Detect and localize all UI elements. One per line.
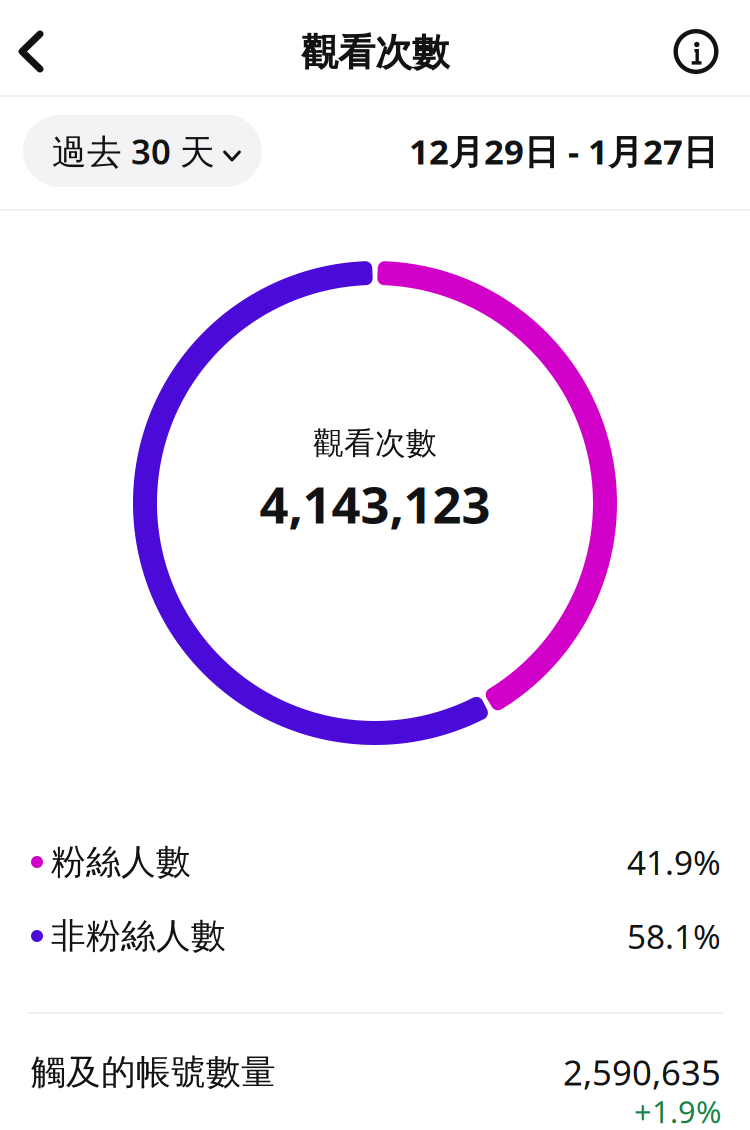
staticText: 觀看次數: [313, 424, 437, 462]
button[interactable]: Back: [3, 12, 59, 90]
staticText: 觸及的帳號數量: [31, 1051, 276, 1094]
button[interactable]: 過去 30 天: [23, 115, 262, 187]
staticText: 過去 30 天: [52, 128, 215, 174]
staticText: +1.9%: [634, 1091, 721, 1130]
button[interactable]: Information: [668, 12, 724, 90]
staticText: 58.1%: [627, 914, 721, 958]
staticText: 12月29日 - 1月27日: [409, 128, 718, 174]
staticText: 粉絲人數: [51, 841, 191, 883]
staticText: 非粉絲人數: [51, 915, 226, 957]
staticText: 41.9%: [627, 840, 721, 884]
staticText: 2,590,635: [563, 1049, 721, 1095]
staticText: 觀看次數: [301, 30, 449, 75]
staticText: 4,143,123: [259, 470, 490, 537]
